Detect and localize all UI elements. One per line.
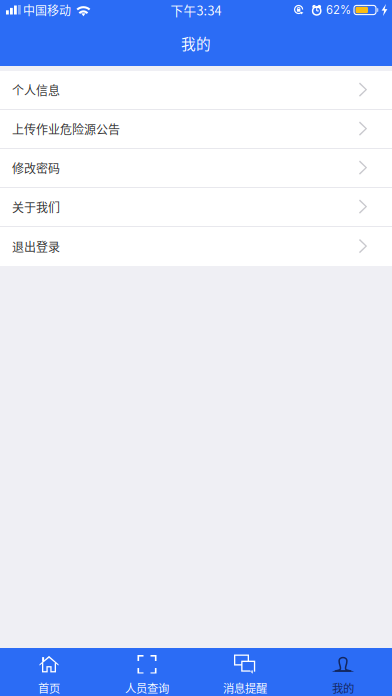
staticText: 消息提醒 (223, 679, 267, 696)
staticText: 中国移动 (23, 1, 71, 19)
staticText: 62% (326, 3, 351, 17)
button[interactable]: 个人信息 (0, 71, 392, 110)
button[interactable]: 退出登录 (0, 227, 392, 266)
button[interactable]: 修改密码 (0, 149, 392, 188)
staticText: 我的 (332, 679, 354, 696)
button[interactable]: 关于我们 (0, 188, 392, 227)
staticText: 修改密码 (12, 159, 60, 177)
button[interactable]: 我的 (294, 648, 392, 696)
staticText: 人员查询 (125, 679, 169, 696)
staticText: 上传作业危险源公告 (12, 120, 120, 138)
button[interactable]: 首页 (0, 648, 98, 696)
button[interactable]: 人员查询 (98, 648, 196, 696)
staticText: 下午3:34 (170, 1, 221, 19)
button[interactable]: 上传作业危险源公告 (0, 110, 392, 149)
staticText: 关于我们 (12, 198, 60, 216)
staticText: 退出登录 (12, 238, 60, 255)
staticText: 个人信息 (12, 81, 60, 99)
staticText: 我的 (181, 32, 211, 54)
staticText: 首页 (38, 679, 60, 696)
button[interactable]: 消息提醒 (196, 648, 294, 696)
